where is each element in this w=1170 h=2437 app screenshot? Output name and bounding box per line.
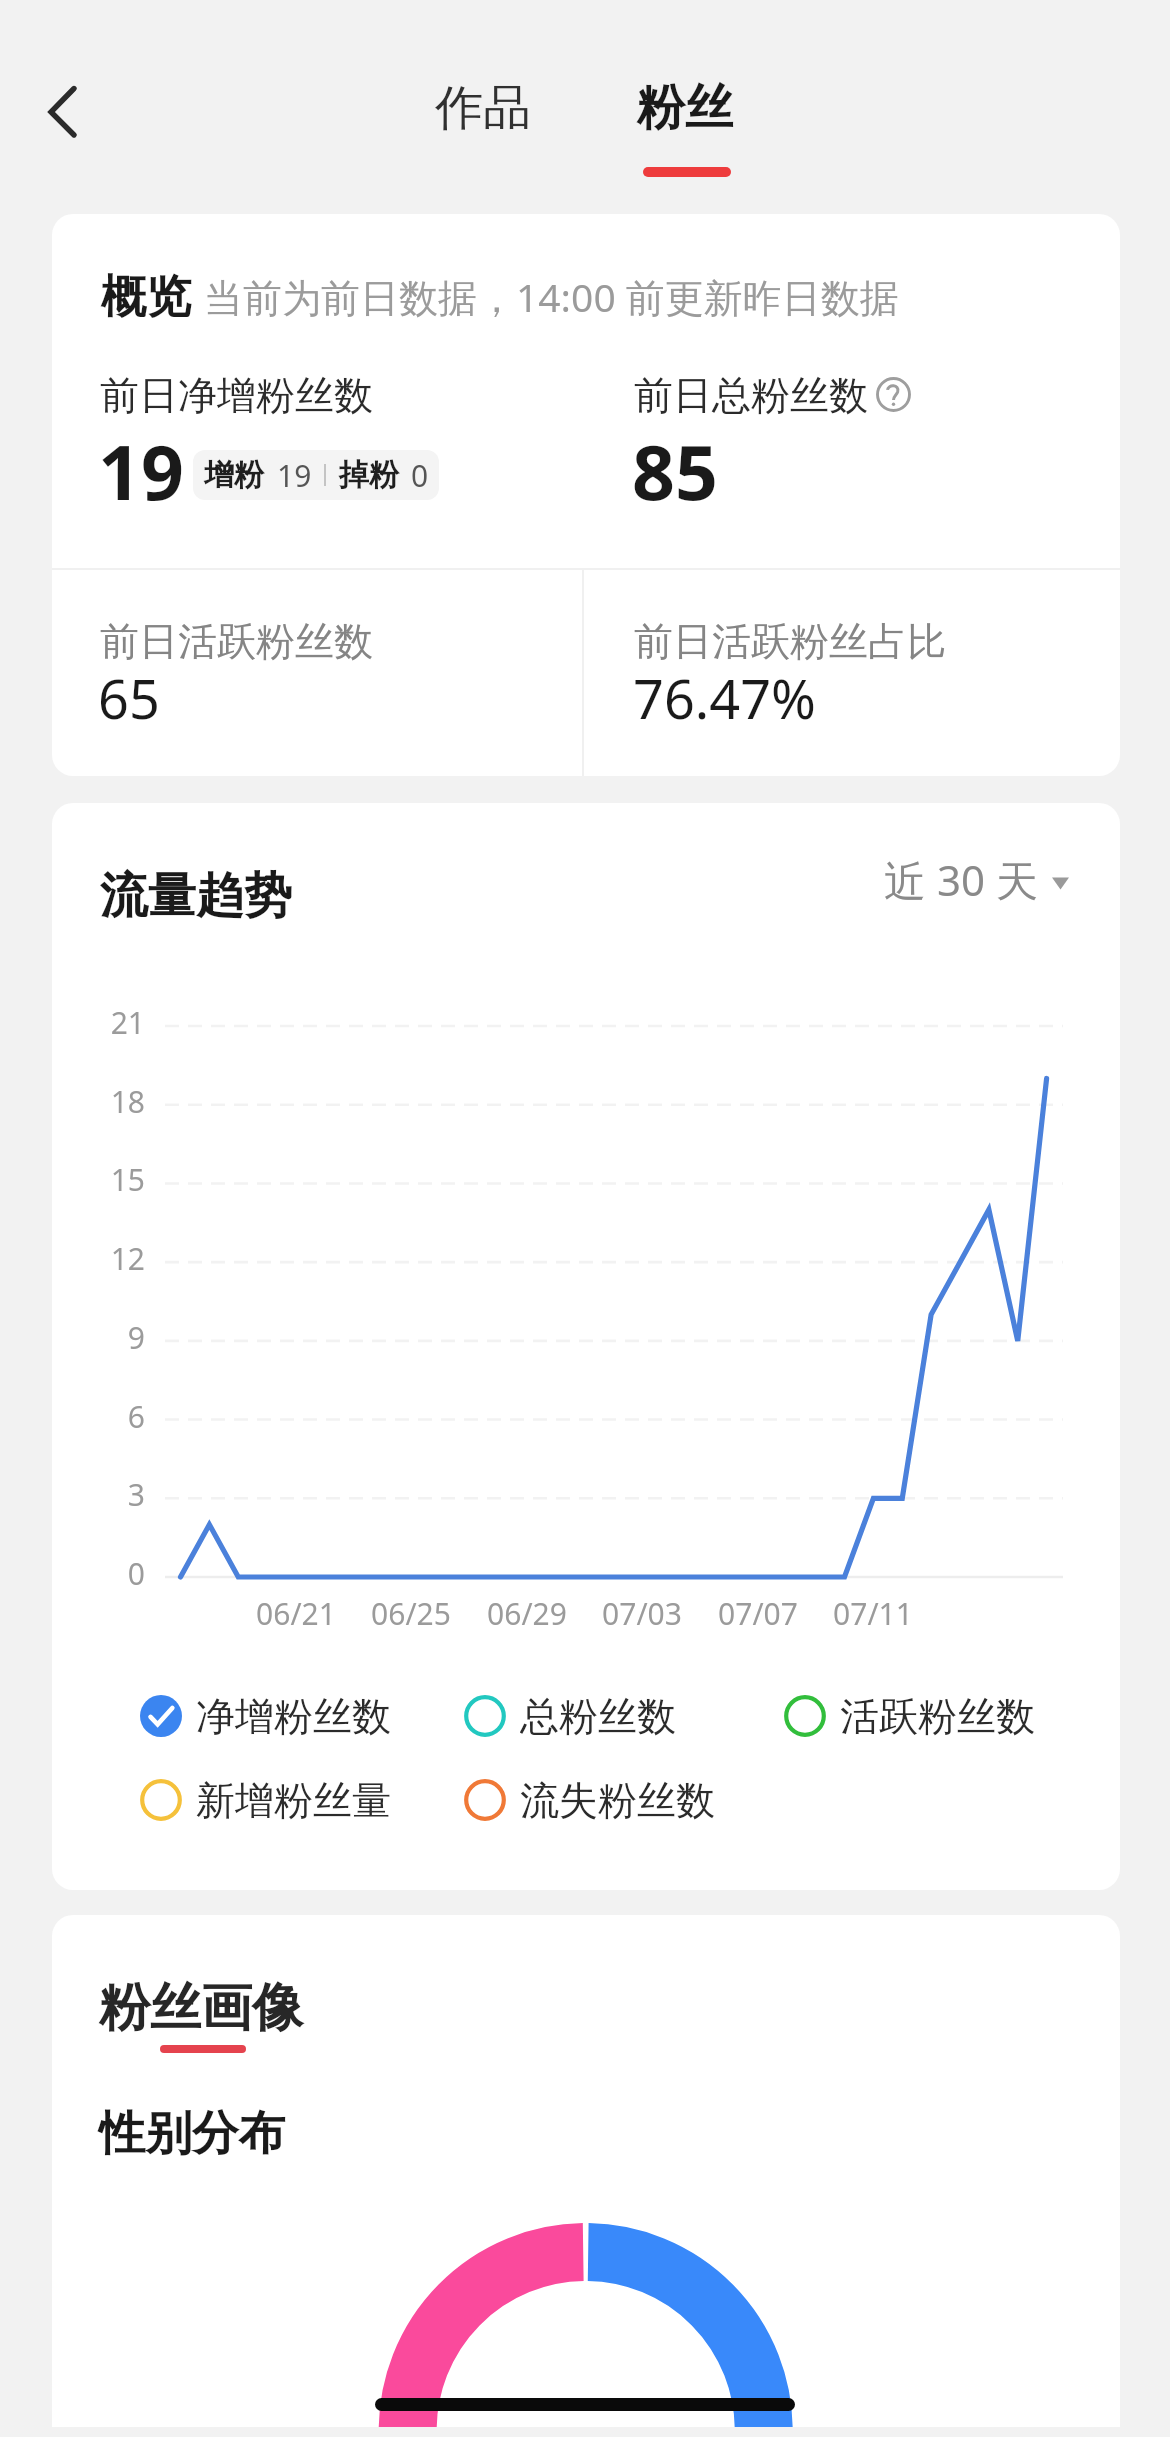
staticText: 18 [88,1081,145,1122]
staticText: 0 [88,1553,145,1594]
staticText: 07/03 [582,1593,702,1634]
staticText: 06/29 [467,1593,587,1634]
staticText: 12 [88,1238,145,1279]
staticText: 作品 [435,78,531,138]
staticText: 3 [88,1474,145,1515]
staticText: 06/25 [351,1593,471,1634]
staticText: 0 [411,455,429,496]
staticText: 06/21 [236,1593,356,1634]
button[interactable]: 活跃粉丝数 [784,1692,1035,1740]
staticText: 掉粉 [339,456,399,494]
staticText: 19 [277,455,312,496]
staticText: 前日净增粉丝数 [100,371,373,420]
staticText: 前日活跃粉丝数 [100,617,373,666]
staticText: 粉丝 [637,78,733,138]
button[interactable]: 总粉丝数 [464,1692,676,1740]
staticText: 净增粉丝数 [196,1692,391,1740]
button[interactable]: 流失粉丝数 [464,1776,715,1824]
staticText: 85 [632,420,718,522]
staticText: 前日活跃粉丝占比 [634,617,946,666]
staticText: 07/11 [813,1593,933,1634]
button[interactable]: Back [22,85,76,139]
staticText: 6 [88,1396,145,1437]
staticText: 流失粉丝数 [520,1776,715,1824]
staticText: 15 [88,1159,145,1200]
staticText: 性别分布 [99,2104,285,2163]
button[interactable]: 新增粉丝量 [140,1776,391,1824]
staticText: 近 30 天 [884,851,1038,908]
staticText: 65 [98,661,160,735]
button[interactable]: 净增粉丝数 [140,1692,391,1740]
button[interactable]: 粉丝 [611,60,758,155]
staticText: 新增粉丝量 [196,1776,391,1824]
staticText: 19 [98,420,184,522]
staticText: 07/07 [698,1593,818,1634]
staticText: 活跃粉丝数 [840,1692,1035,1740]
staticText: 前日总粉丝数 [634,371,868,420]
staticText: 粉丝画像 [99,1976,303,2040]
staticText: 21 [88,1002,145,1043]
button[interactable]: 近 30 天 [884,849,1069,909]
staticText: 当前为前日数据，14:00 前更新昨日数据 [204,270,899,323]
staticText: 流量趋势 [100,866,292,926]
staticText: 概览 [101,269,191,326]
staticText: 总粉丝数 [520,1692,676,1740]
staticText: 76.47% [633,661,816,735]
button[interactable]: Help [876,377,911,412]
button[interactable]: 作品 [412,60,554,155]
staticText: 增粉 [204,456,264,494]
staticText: 9 [88,1317,145,1358]
